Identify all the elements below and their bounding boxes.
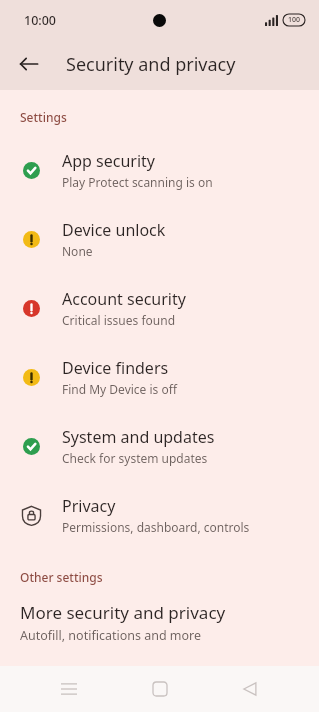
button[interactable]: App security (0, 135, 319, 204)
button[interactable]: Privacy (0, 480, 319, 549)
staticText: 10:00 (24, 12, 57, 29)
staticText: Device finders (62, 357, 169, 379)
staticText: Privacy (62, 495, 116, 517)
staticText: More security and privacy (20, 601, 226, 624)
button[interactable]: Back (10, 45, 48, 83)
button[interactable]: Device finders (0, 342, 319, 411)
staticText: Permissions, dashboard, controls (62, 519, 250, 535)
staticText: Critical issues found (62, 312, 176, 328)
staticText: Find My Device is off (62, 381, 177, 397)
button[interactable]: Device unlock (0, 204, 319, 273)
staticText: Settings (20, 109, 67, 125)
button[interactable]: System and updates (0, 411, 319, 480)
staticText: Security and privacy (66, 52, 236, 77)
staticText: 100 (288, 15, 301, 25)
staticText: System and updates (62, 426, 215, 448)
button[interactable]: More security and privacy (0, 599, 319, 650)
button[interactable]: Back (228, 667, 272, 711)
staticText: Device unlock (62, 219, 166, 241)
staticText: Autofill, notifications and more (20, 627, 202, 644)
staticText: App security (62, 150, 155, 172)
staticText: Play Protect scanning is on (62, 174, 213, 190)
staticText: Account security (62, 288, 186, 310)
staticText: None (62, 243, 93, 259)
staticText: Check for system updates (62, 450, 208, 466)
staticText: Other settings (20, 569, 103, 585)
button[interactable]: Recent apps (47, 667, 91, 711)
button[interactable]: Account security (0, 273, 319, 342)
button[interactable]: Home (138, 667, 182, 711)
